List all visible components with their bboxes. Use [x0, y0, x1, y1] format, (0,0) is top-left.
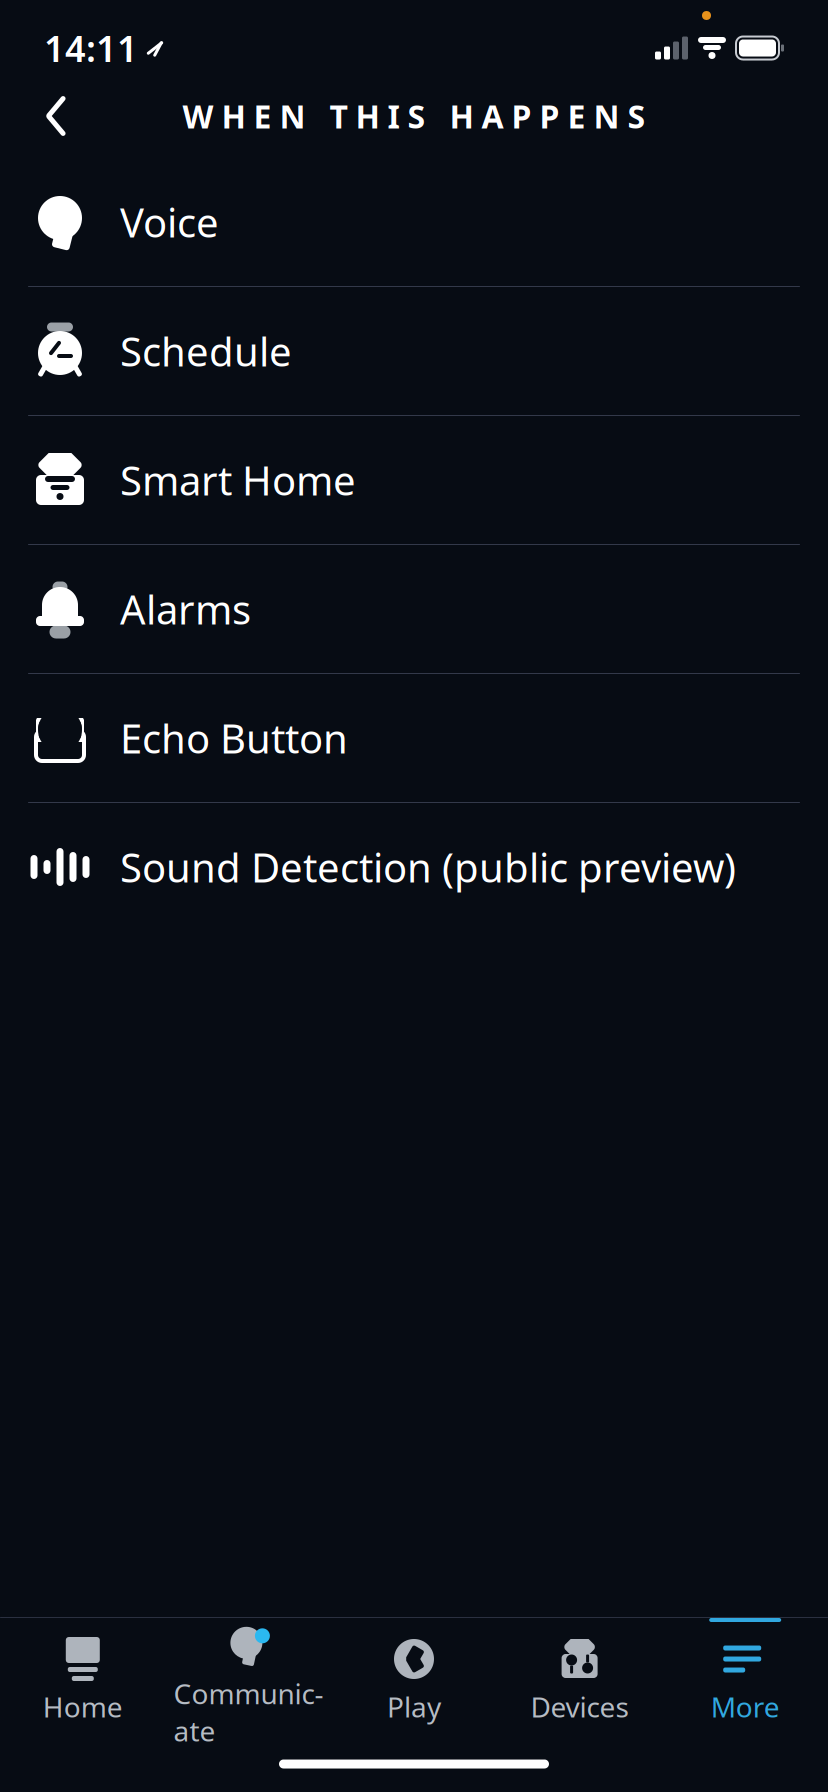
- staticText: Devices: [531, 1688, 629, 1725]
- staticText: Communicate: [173, 1675, 323, 1749]
- button[interactable]: Smart Home: [0, 416, 828, 544]
- staticText: Smart Home: [120, 453, 356, 506]
- staticText: 14:11: [44, 24, 138, 72]
- staticText: Sound Detection (public preview): [120, 840, 736, 893]
- staticText: W H E N T H I S H A P P E N S: [182, 95, 645, 137]
- button[interactable]: Voice: [0, 158, 828, 286]
- button[interactable]: More: [662, 1618, 828, 1736]
- button[interactable]: Alarms: [0, 545, 828, 673]
- staticText: Voice: [120, 195, 219, 248]
- staticText: Alarms: [120, 582, 251, 635]
- button[interactable]: Back: [24, 84, 88, 148]
- staticText: Schedule: [120, 324, 292, 377]
- button[interactable]: Home: [0, 1618, 166, 1736]
- staticText: Home: [43, 1688, 123, 1725]
- staticText: Echo Button: [120, 711, 348, 764]
- button[interactable]: Schedule: [0, 287, 828, 415]
- button[interactable]: Communicate: [166, 1618, 331, 1736]
- button[interactable]: Devices: [497, 1618, 662, 1736]
- staticText: More: [711, 1688, 780, 1725]
- button[interactable]: Sound Detection (public preview): [0, 803, 828, 931]
- button[interactable]: Play: [331, 1618, 497, 1736]
- staticText: Play: [387, 1688, 441, 1725]
- button[interactable]: Echo Button: [0, 674, 828, 802]
